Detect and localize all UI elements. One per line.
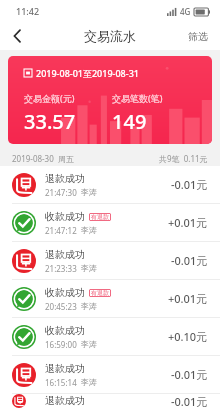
staticText: 4G (180, 6, 191, 17)
staticText: 李涛 (81, 263, 97, 273)
staticText: -0.01元 (171, 367, 208, 382)
staticText: +0.10元 (168, 329, 208, 344)
staticText: 收款成功 (45, 324, 85, 337)
staticText: 收款成功 (45, 286, 85, 299)
staticText: 20:45:23 (45, 301, 77, 312)
staticText: 11:42 (16, 5, 40, 17)
button[interactable]: 筛选 (176, 22, 220, 50)
staticText: 21:23:33 (45, 263, 77, 274)
staticText: 退款成功 (45, 394, 85, 407)
staticText: 16:59:00 (45, 339, 77, 350)
staticText: 33.57 (24, 108, 76, 135)
staticText: 李涛 (81, 339, 97, 349)
button[interactable]: 退款成功 (0, 394, 220, 408)
staticText: 退款成功 (45, 362, 85, 375)
staticText: -0.01元 (171, 177, 208, 192)
button[interactable]: 收款成功 (0, 318, 220, 356)
staticText: -0.01元 (171, 394, 208, 408)
button[interactable]: 收款成功 (0, 204, 220, 242)
button[interactable]: 收款成功 (0, 280, 220, 318)
staticText: +0.01元 (168, 215, 208, 230)
button[interactable]: 退款成功 (0, 356, 220, 394)
staticText: -0.01元 (171, 253, 208, 268)
staticText: 李涛 (81, 187, 97, 197)
staticText: 李涛 (81, 377, 97, 387)
staticText: 筛选 (188, 30, 208, 43)
staticText: 149 (112, 108, 147, 135)
staticText: 有退款 (91, 289, 109, 297)
staticText: 李涛 (81, 301, 97, 311)
staticText: 交易笔数(笔) (112, 92, 163, 104)
button[interactable]: 退款成功 (0, 242, 220, 280)
staticText: 2019-08-01至2019-08-31 (36, 67, 139, 79)
staticText: 退款成功 (45, 248, 85, 261)
button[interactable]: 2019-08-01至2019-08-31 (8, 56, 212, 144)
staticText: 李涛 (81, 225, 97, 235)
staticText: 交易流水 (84, 28, 136, 44)
staticText: 有退款 (91, 213, 109, 221)
staticText: 交易金额(元) (24, 92, 75, 104)
staticText: 16:15:14 (45, 377, 77, 388)
button[interactable]: Back (0, 22, 34, 50)
button[interactable]: 退款成功 (0, 166, 220, 204)
staticText: 21:47:30 (45, 187, 77, 198)
staticText: +0.01元 (168, 291, 208, 306)
staticText: 2019-08-30 周五 (12, 153, 159, 164)
staticText: 收款成功 (45, 210, 85, 223)
staticText: 共9笔 0.11元 (159, 153, 208, 164)
staticText: 退款成功 (45, 172, 85, 185)
staticText: 21:47:12 (45, 225, 77, 236)
